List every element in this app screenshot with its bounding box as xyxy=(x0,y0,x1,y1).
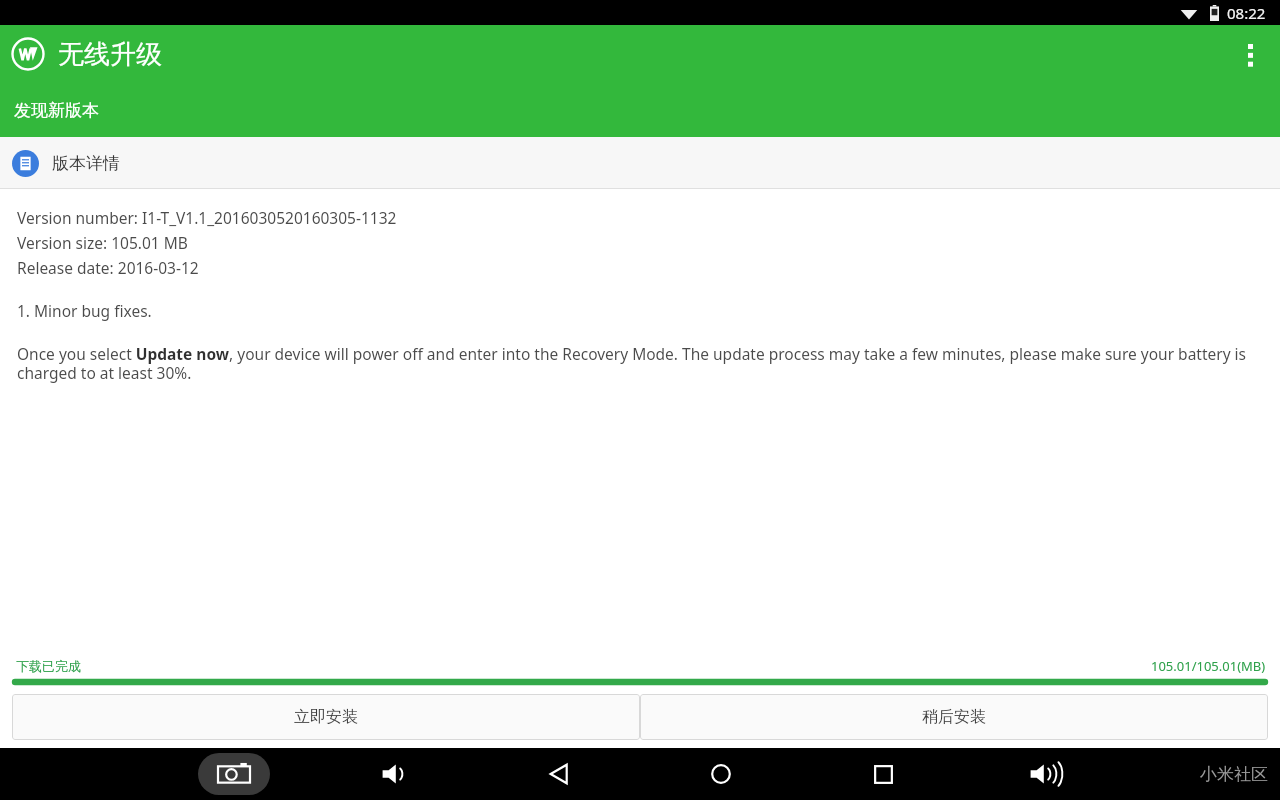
staticText: Once you select Update now, your device … xyxy=(17,343,1269,383)
staticText: 下载已完成 xyxy=(16,658,81,674)
button[interactable]: Volume up xyxy=(1021,750,1069,798)
staticText: 08:22 xyxy=(1227,3,1266,23)
staticText: 105.01/105.01(MB) xyxy=(1151,657,1266,675)
button[interactable]: 立即安装 xyxy=(12,694,640,740)
staticText: Release date: 2016-03-12 xyxy=(17,257,199,278)
button[interactable]: 稍后安装 xyxy=(640,694,1268,740)
staticText: 小米社区 xyxy=(1200,764,1268,785)
staticText: 无线升级 xyxy=(58,38,162,71)
button[interactable]: Screenshot xyxy=(198,753,270,795)
button[interactable]: More options xyxy=(1226,31,1274,79)
staticText: 发现新版本 xyxy=(14,100,99,121)
button[interactable]: Recents xyxy=(859,750,907,798)
button[interactable]: Volume down xyxy=(373,750,421,798)
button[interactable]: Back xyxy=(535,750,583,798)
staticText: 立即安装 xyxy=(294,707,358,727)
button[interactable]: Home xyxy=(697,750,745,798)
staticText: 版本详情 xyxy=(52,153,120,174)
staticText: 1. Minor bug fixes. xyxy=(17,300,152,321)
staticText: Version number: I1-T_V1.1_20160305201603… xyxy=(17,207,397,228)
staticText: 稍后安装 xyxy=(922,707,986,727)
staticText: Version size: 105.01 MB xyxy=(17,232,188,253)
